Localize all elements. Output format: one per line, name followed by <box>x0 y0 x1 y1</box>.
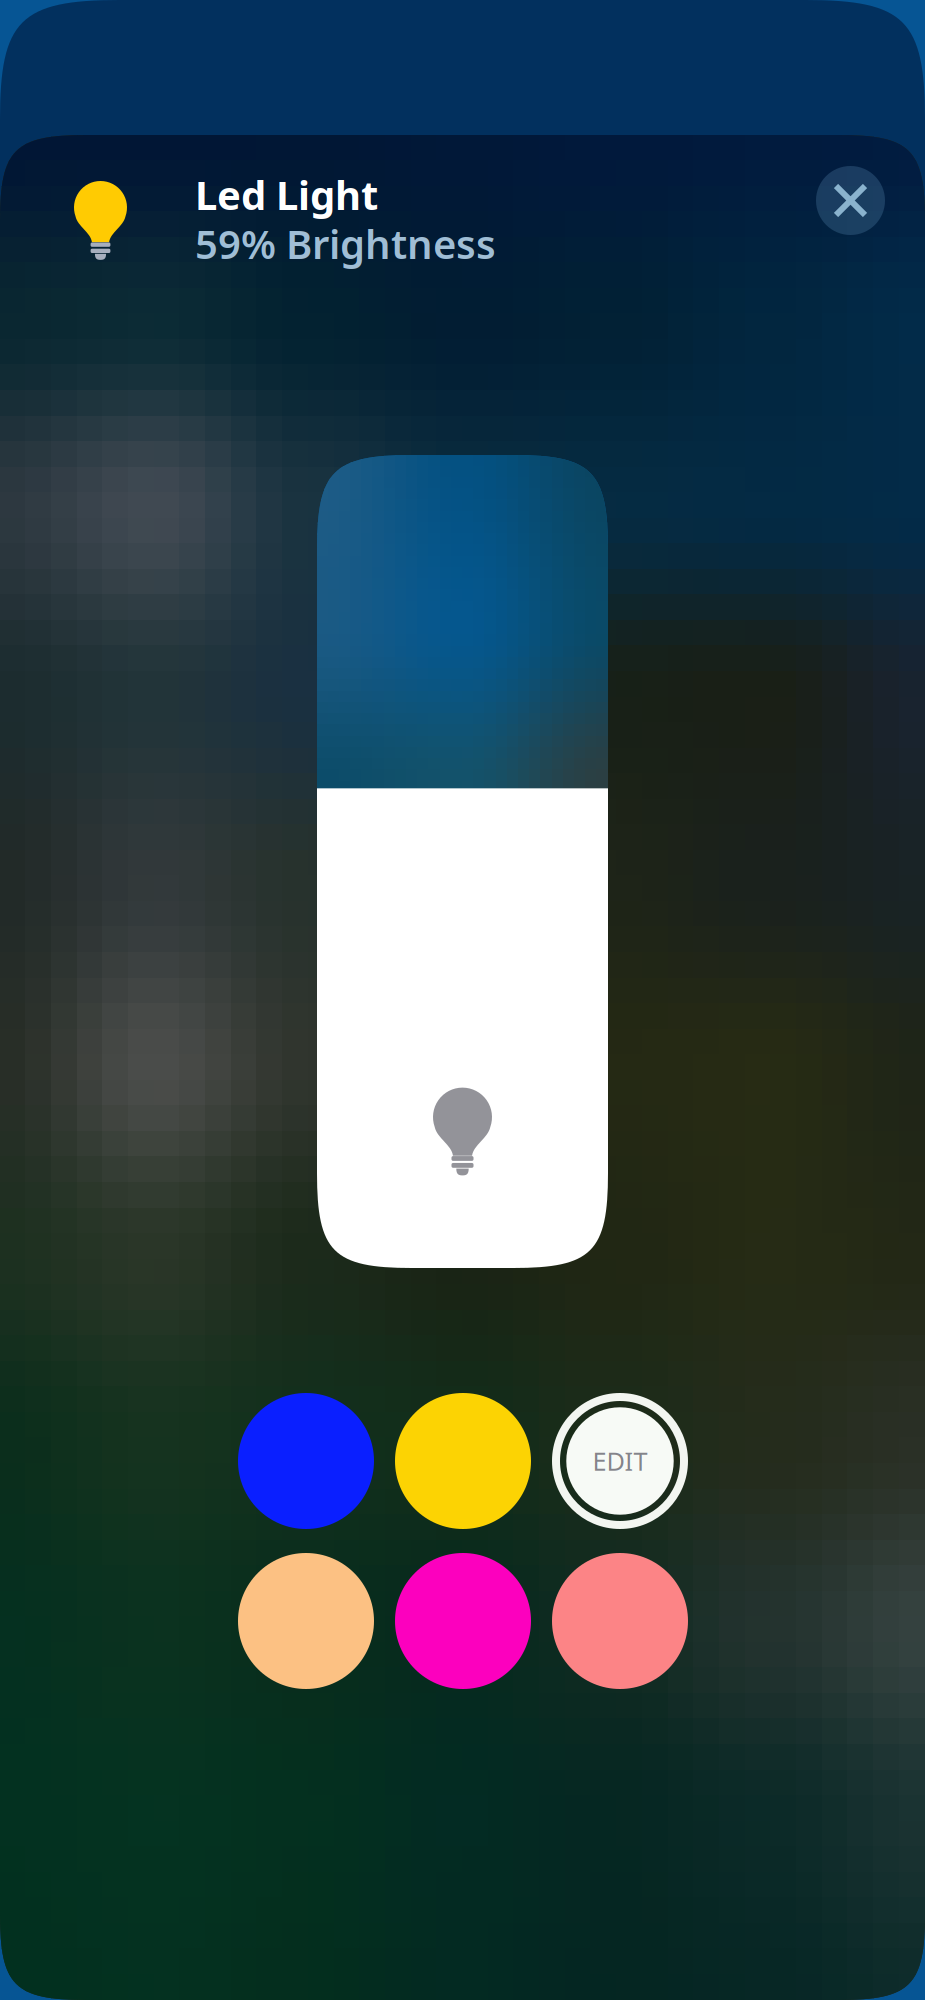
button[interactable]: EDIT <box>552 1393 688 1529</box>
button[interactable]: Close <box>816 166 885 235</box>
staticText: 59% Brightness <box>195 217 496 270</box>
button[interactable]: Salmon <box>552 1553 688 1689</box>
button[interactable]: Blue <box>238 1393 374 1529</box>
button[interactable]: Brightness <box>317 455 608 1268</box>
staticText: Led Light <box>195 168 378 221</box>
button[interactable]: Peach <box>238 1553 374 1689</box>
button[interactable]: Magenta <box>395 1553 531 1689</box>
staticText: EDIT <box>592 1444 647 1478</box>
button[interactable]: Yellow <box>395 1393 531 1529</box>
